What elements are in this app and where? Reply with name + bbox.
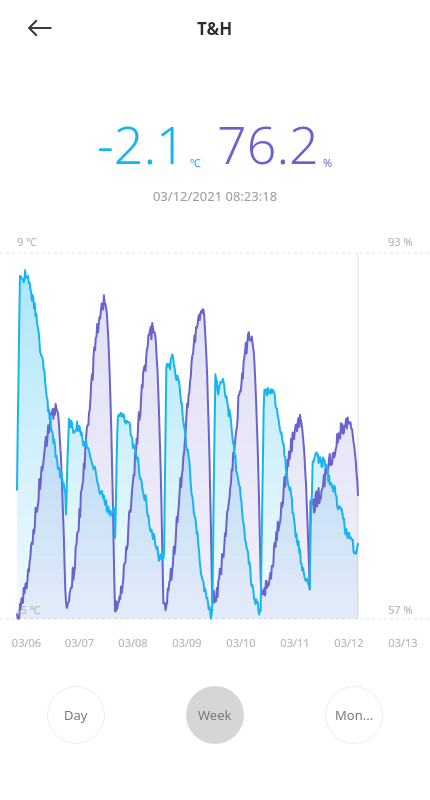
staticText: 03/06 (0, 635, 53, 650)
staticText: 03/09 (160, 635, 214, 650)
staticText: -5 ℃ (17, 602, 41, 617)
staticText: 03/13 (376, 635, 430, 650)
staticText: 57 % (388, 602, 413, 617)
staticText: Week (198, 706, 232, 724)
button[interactable]: Week (186, 686, 244, 744)
staticText: 03/07 (53, 635, 106, 650)
staticText: T&H (197, 17, 233, 40)
staticText: 03/11 (268, 635, 322, 650)
button[interactable]: Mon... (325, 686, 383, 744)
staticText: 9 ℃ (17, 234, 38, 249)
staticText: 03/12 (322, 635, 376, 650)
staticText: Day (64, 706, 88, 724)
staticText: -2.1 (97, 108, 186, 179)
button[interactable]: Back (18, 6, 62, 50)
button[interactable]: Day (47, 686, 105, 744)
staticText: % (323, 155, 333, 170)
staticText: 93 % (388, 234, 413, 249)
staticText: 03/12/2021 08:23:18 (0, 187, 430, 205)
staticText: Mon... (335, 706, 374, 724)
staticText: 03/10 (214, 635, 268, 650)
staticText: ℃ (190, 155, 201, 170)
staticText: 76.2 (217, 108, 319, 179)
staticText: 03/08 (106, 635, 160, 650)
